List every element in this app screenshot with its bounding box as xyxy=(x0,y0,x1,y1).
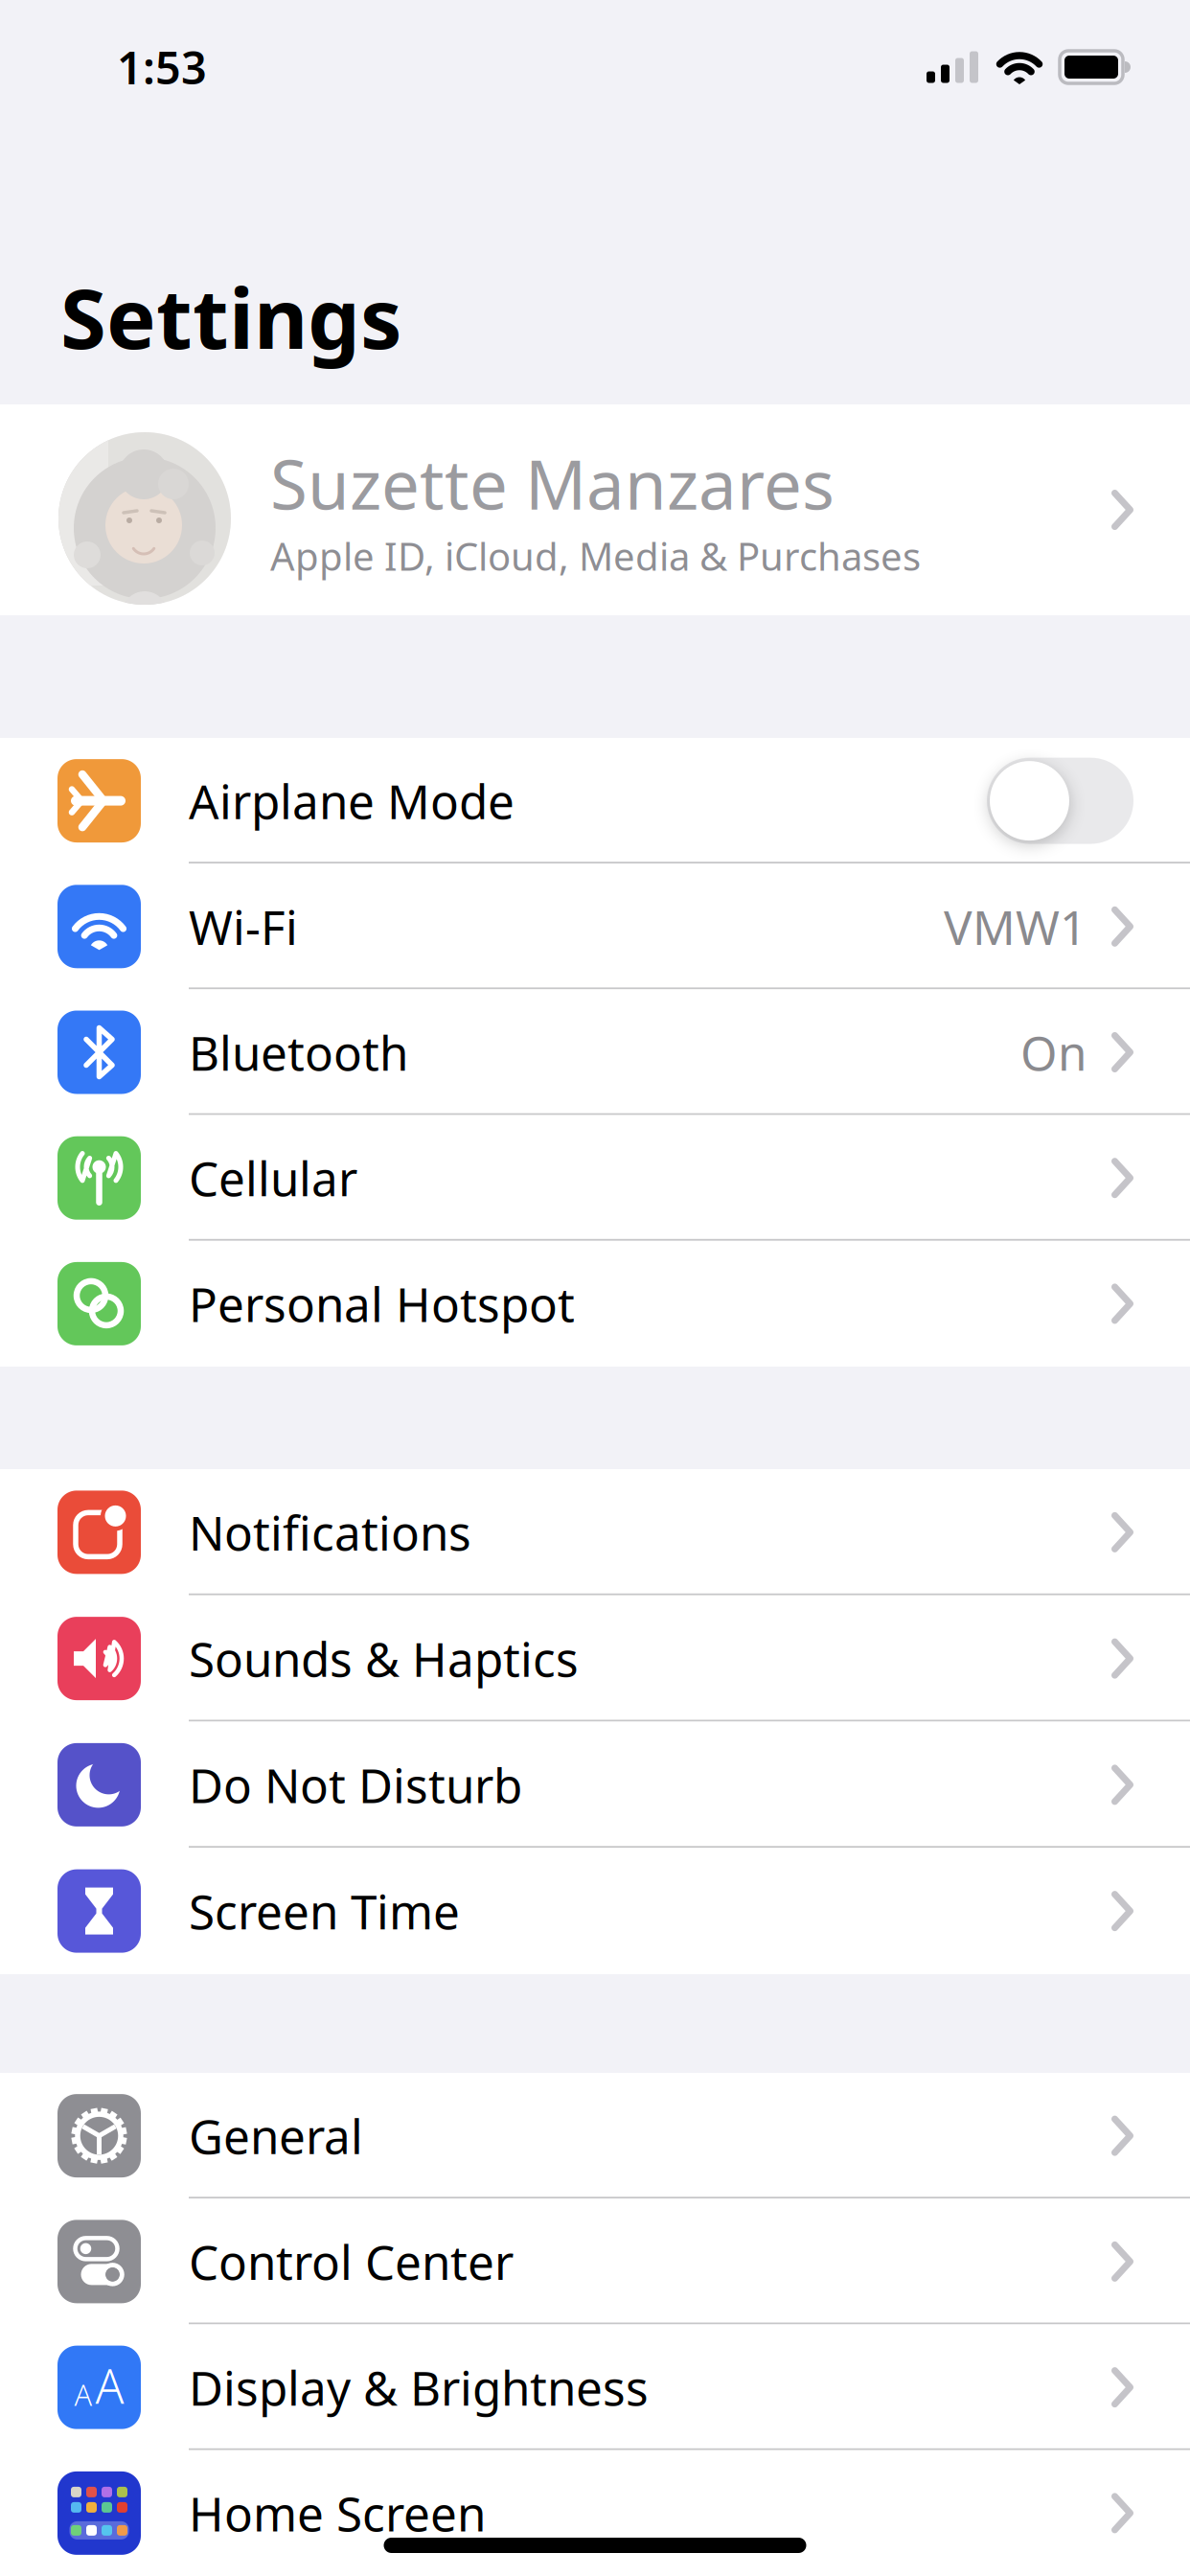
staticText: Settings xyxy=(60,262,402,372)
button[interactable]: General xyxy=(0,2073,1190,2199)
button[interactable]: Suzette Manzares xyxy=(0,404,1190,615)
button[interactable]: Screen Time xyxy=(0,1848,1190,1974)
staticText: Suzette Manzares xyxy=(270,438,835,528)
staticText: Cellular xyxy=(189,1147,357,1209)
staticText: On xyxy=(1020,1021,1087,1084)
staticText: General xyxy=(189,2104,363,2167)
staticText: Airplane Mode xyxy=(189,769,515,832)
staticText: Screen Time xyxy=(189,1880,460,1942)
staticText: A xyxy=(74,2375,92,2414)
button[interactable]: Notifications xyxy=(0,1469,1190,1595)
staticText: 1:53 xyxy=(117,37,207,97)
button[interactable]: A xyxy=(0,2324,1190,2450)
button[interactable]: Control Center xyxy=(0,2199,1190,2324)
staticText: Home Screen xyxy=(189,2482,486,2544)
staticText: Personal Hotspot xyxy=(189,1272,575,1335)
button[interactable]: Home Screen xyxy=(0,2450,1190,2576)
staticText: Control Center xyxy=(189,2230,514,2293)
button[interactable]: Do Not Disturb xyxy=(0,1722,1190,1848)
staticText: Do Not Disturb xyxy=(189,1753,522,1816)
button[interactable]: Cellular xyxy=(0,1115,1190,1241)
staticText: Wi-Fi xyxy=(189,895,298,958)
button[interactable]: Bluetooth xyxy=(0,989,1190,1115)
button[interactable]: Airplane Mode xyxy=(0,738,1190,864)
staticText: Bluetooth xyxy=(189,1021,408,1084)
button[interactable]: Wi-Fi xyxy=(0,864,1190,989)
staticText: Notifications xyxy=(189,1501,471,1564)
staticText: Sounds & Haptics xyxy=(189,1627,579,1690)
staticText: VMW1 xyxy=(944,895,1087,958)
button[interactable]: Sounds & Haptics xyxy=(0,1595,1190,1722)
staticText: Apple ID, iCloud, Media & Purchases xyxy=(270,530,921,581)
staticText: A xyxy=(95,2354,124,2417)
button[interactable]: Personal Hotspot xyxy=(0,1241,1190,1367)
staticText: Display & Brightness xyxy=(189,2356,649,2419)
